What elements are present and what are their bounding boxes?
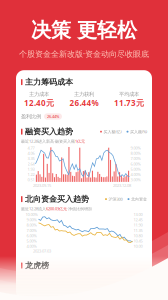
staticText: 13.00 [133, 212, 142, 217]
staticText: 1.93 [27, 166, 34, 172]
staticText: 龙虎榜 [25, 261, 49, 270]
staticText: 11.73元 [114, 98, 144, 108]
staticText: 个股资金全新改版·资金动向尽收眼底 [19, 49, 149, 59]
staticText: 2023-09-15 [33, 183, 51, 188]
staticText: 4.77 [27, 145, 34, 151]
staticText: 北向资金 [131, 197, 147, 201]
staticText: 融资买入趋势 [25, 127, 73, 136]
staticText: 6.00% [130, 161, 140, 166]
staticText: 26.44% [69, 98, 98, 108]
staticText: 决策 更轻松 [31, 18, 137, 43]
staticText: 7.00% [26, 228, 36, 233]
staticText: 6200.03亿元 [46, 206, 67, 211]
staticText: 4.00% [130, 172, 140, 177]
staticText: 10.00 [133, 244, 142, 249]
staticText: 盈利比例 [21, 113, 41, 120]
staticText: 9.00% [130, 145, 140, 151]
staticText: 4.00% [26, 244, 36, 249]
staticText: 10.00% [25, 212, 37, 217]
staticText: 7.00% [130, 156, 140, 161]
staticText: 主力筹码成本 [25, 77, 73, 87]
staticText: 10.45 [133, 238, 142, 244]
staticText: 3.35 [27, 156, 34, 161]
staticText: 沪深300 [108, 196, 122, 202]
staticText: 12.40元 [24, 98, 54, 108]
staticText: 12.45 [133, 217, 142, 222]
staticText: 北向资金买入趋势 [25, 194, 89, 204]
staticText: 1亿元 [75, 139, 85, 144]
staticText: 买入额(亿) [103, 129, 121, 134]
staticText: 1.22 [27, 172, 34, 177]
staticText: 5.00% [130, 166, 140, 172]
staticText: 11.90 [133, 222, 142, 228]
staticText: 4.06 [27, 151, 34, 156]
staticText: 11.35 [133, 228, 142, 233]
staticText: 6.00% [26, 233, 36, 238]
staticText: 2023-12-08 [113, 183, 131, 188]
staticText: 3.00% [130, 177, 140, 182]
staticText: 10.80 [133, 233, 142, 238]
staticText: 8.00% [130, 151, 140, 156]
staticText: 2.64 [27, 161, 34, 166]
staticText: 0.51 [27, 177, 34, 182]
staticText: 买入额(%) [130, 129, 147, 134]
staticText: 2023-07-03 [33, 248, 51, 254]
staticText: 26.44% [47, 114, 59, 119]
staticText: 平均成本 [119, 91, 139, 98]
staticText: 主力获利 [74, 91, 94, 98]
staticText: 8.00% [26, 222, 36, 228]
staticText: 最近12.28进入新高·融资买入额 [21, 139, 75, 144]
staticText: 5.00% [26, 238, 36, 244]
staticText: 最近12.28流入 [21, 206, 46, 211]
staticText: 主力成本 [29, 91, 49, 98]
staticText: 9.00% [26, 217, 36, 222]
staticText: ·净值比例增加 [67, 206, 92, 211]
